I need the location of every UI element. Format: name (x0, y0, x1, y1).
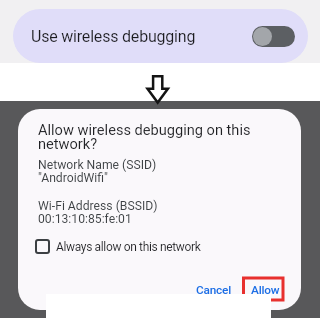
staticText: Network Name (SSID) "AndroidWifi" (38, 158, 157, 185)
staticText: Wi-Fi Address (BSSID) 00:13:10:85:fe:01 (38, 199, 158, 226)
staticText: Allow wireless debugging on this network… (38, 121, 251, 153)
button[interactable]: Allow (251, 283, 280, 297)
button[interactable]: Cancel (196, 283, 231, 297)
button[interactable] (252, 26, 295, 47)
button[interactable]: Always allow on this network (35, 239, 201, 254)
button[interactable]: Use wireless debugging (13, 9, 308, 63)
staticText: Always allow on this network (56, 240, 201, 254)
staticText: Use wireless debugging (31, 27, 196, 46)
